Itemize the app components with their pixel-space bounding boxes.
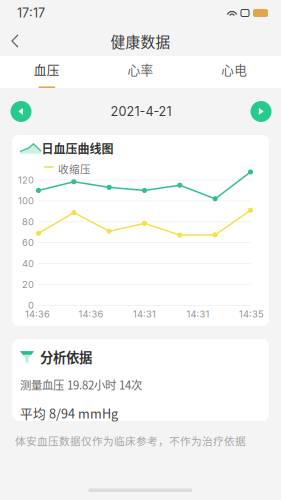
button[interactable]: 血压 bbox=[0, 56, 94, 88]
button[interactable]: Previous day bbox=[1, 89, 41, 133]
button[interactable]: 心电 bbox=[187, 56, 281, 88]
staticText: 收缩压 bbox=[58, 161, 91, 176]
staticText: 20 bbox=[22, 279, 34, 290]
button[interactable]: 心率 bbox=[94, 56, 187, 88]
staticText: 平均 8/94 mmHg bbox=[20, 404, 118, 422]
staticText: 健康数据 bbox=[110, 30, 170, 52]
staticText: 2021-4-21 bbox=[110, 104, 171, 119]
staticText: 日血压曲线图 bbox=[41, 139, 113, 157]
staticText: 14:31 bbox=[186, 308, 209, 320]
staticText: 心率 bbox=[127, 60, 153, 78]
staticText: 14:35 bbox=[239, 308, 264, 320]
staticText: 测量血压 19.82小时 14次 bbox=[20, 376, 142, 393]
staticText: 60 bbox=[22, 237, 34, 248]
button[interactable]: Next day bbox=[241, 89, 281, 133]
staticText: 分析依据 bbox=[40, 347, 92, 366]
staticText: 心电 bbox=[221, 60, 247, 78]
staticText: 17:17 bbox=[17, 5, 45, 21]
staticText: 80 bbox=[22, 216, 34, 227]
staticText: 120 bbox=[18, 174, 34, 186]
staticText: 14:31 bbox=[133, 308, 156, 320]
staticText: 血压 bbox=[34, 60, 60, 78]
staticText: 40 bbox=[22, 258, 34, 269]
staticText: 0 bbox=[28, 300, 34, 311]
staticText: 体安血压数据仅作为临床参考，不作为治疗依据 bbox=[15, 433, 246, 448]
staticText: 14:36 bbox=[78, 308, 103, 320]
staticText: 14:36 bbox=[25, 308, 50, 320]
staticText: 100 bbox=[18, 195, 34, 207]
button[interactable]: Back bbox=[0, 26, 31, 56]
